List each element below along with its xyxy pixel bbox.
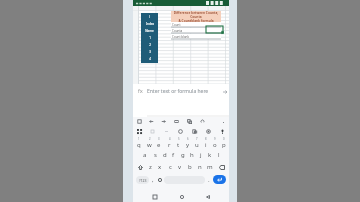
button[interactable]: 2 — [144, 137, 154, 149]
button[interactable]: 0 — [219, 137, 228, 149]
staticText: a — [143, 151, 147, 159]
button[interactable]: Home — [176, 191, 187, 202]
button[interactable]: ?123 — [136, 176, 149, 184]
button[interactable]: Back — [202, 191, 213, 202]
staticText: Enter text or formula here — [147, 88, 209, 95]
button[interactable]: 7 — [192, 137, 201, 149]
staticText: l — [149, 15, 150, 19]
button[interactable]: 3 — [154, 137, 164, 149]
staticText: 0 — [223, 137, 225, 141]
staticText: 5 — [178, 137, 180, 141]
staticText: z — [149, 163, 152, 171]
button[interactable]: 8 — [201, 137, 210, 149]
button[interactable]: Count blank — [171, 34, 221, 39]
button[interactable]: Select all — [173, 118, 180, 125]
button[interactable]: Emoji — [177, 128, 184, 135]
button[interactable]: j — [196, 149, 205, 161]
button[interactable]: . — [205, 173, 212, 186]
button[interactable]: k — [205, 149, 214, 161]
button[interactable]: Back — [148, 118, 155, 125]
staticText: t — [177, 141, 180, 149]
staticText: p — [222, 141, 226, 149]
button[interactable]: Stickers — [191, 128, 198, 135]
staticText: r — [168, 141, 171, 149]
button[interactable]: 5 — [174, 137, 183, 149]
button[interactable]: x — [155, 161, 165, 173]
staticText: 7 — [196, 137, 198, 141]
staticText: o — [213, 141, 217, 149]
staticText: Count blank — [172, 35, 190, 39]
staticText: u — [195, 141, 199, 149]
button[interactable]: g — [178, 149, 187, 161]
staticText: k — [208, 151, 212, 159]
button[interactable]: fx — [133, 84, 229, 117]
staticText: ?123 — [139, 178, 147, 183]
button[interactable]: Copy — [186, 118, 193, 125]
button[interactable]: b — [185, 161, 195, 173]
staticText: 6 — [187, 137, 189, 141]
button[interactable]: Count — [171, 22, 221, 27]
button[interactable]: c — [165, 161, 175, 173]
staticText: m — [207, 163, 213, 171]
button[interactable]: Recent apps — [149, 191, 160, 202]
button[interactable]: l — [141, 13, 158, 63]
staticText: i — [205, 141, 207, 149]
button[interactable]: f — [169, 149, 178, 161]
staticText: 2 — [149, 43, 151, 47]
other: Expand formula bar — [223, 89, 227, 95]
button[interactable]: 1 — [134, 137, 144, 149]
staticText: g — [181, 151, 185, 159]
button[interactable]: l — [214, 149, 223, 161]
button[interactable]: 9 — [210, 137, 219, 149]
staticText: 3 — [158, 137, 160, 141]
staticText: Name — [145, 29, 154, 33]
staticText: Counta — [172, 29, 183, 33]
staticText: 4 — [169, 137, 171, 141]
button[interactable]: Undo — [199, 118, 206, 125]
staticText: 9 — [214, 137, 216, 141]
button[interactable]: Enter — [213, 175, 226, 184]
staticText: Difference between Counta, Counta & Coun… — [172, 11, 220, 22]
button[interactable]: Cut — [149, 128, 156, 135]
staticText: s — [154, 151, 157, 159]
button[interactable]: z — [146, 161, 155, 173]
button[interactable]: Shift — [134, 161, 146, 173]
button[interactable]: Forward — [160, 118, 167, 125]
button[interactable]: More options — [220, 119, 226, 125]
button[interactable]: 4 — [164, 137, 174, 149]
staticText: j — [200, 151, 202, 159]
staticText: w — [147, 141, 152, 149]
button[interactable]: Counta — [171, 28, 221, 33]
button[interactable]: Grid options — [136, 128, 143, 135]
button[interactable]: Clipboard — [136, 118, 143, 125]
staticText: f — [172, 151, 175, 159]
staticText: x — [158, 163, 162, 171]
button[interactable]: Paste — [163, 128, 170, 135]
button[interactable]: a — [140, 149, 150, 161]
button[interactable]: d — [160, 149, 169, 161]
button[interactable]: n — [195, 161, 205, 173]
staticText: 8 — [205, 137, 207, 141]
staticText: e — [157, 141, 161, 149]
staticText: . — [208, 176, 210, 184]
button[interactable]: Backspace — [215, 161, 228, 173]
button[interactable]: 6 — [183, 137, 192, 149]
button[interactable]: , — [149, 173, 156, 186]
staticText: 2 — [149, 137, 151, 141]
staticText: fx — [138, 87, 143, 95]
button[interactable]: m — [205, 161, 215, 173]
button[interactable]: Voice input — [219, 128, 226, 135]
staticText: Count — [172, 23, 181, 27]
staticText: y — [186, 141, 190, 149]
button[interactable]: GIF — [205, 128, 212, 135]
button[interactable]: h — [187, 149, 196, 161]
button[interactable]: Settings — [156, 173, 163, 186]
staticText: h — [190, 151, 194, 159]
button[interactable]: s — [150, 149, 160, 161]
staticText: l — [218, 151, 220, 159]
staticText: Index — [146, 22, 154, 26]
button[interactable]: v — [175, 161, 185, 173]
staticText: 4 — [149, 57, 151, 61]
staticText: d — [163, 151, 167, 159]
